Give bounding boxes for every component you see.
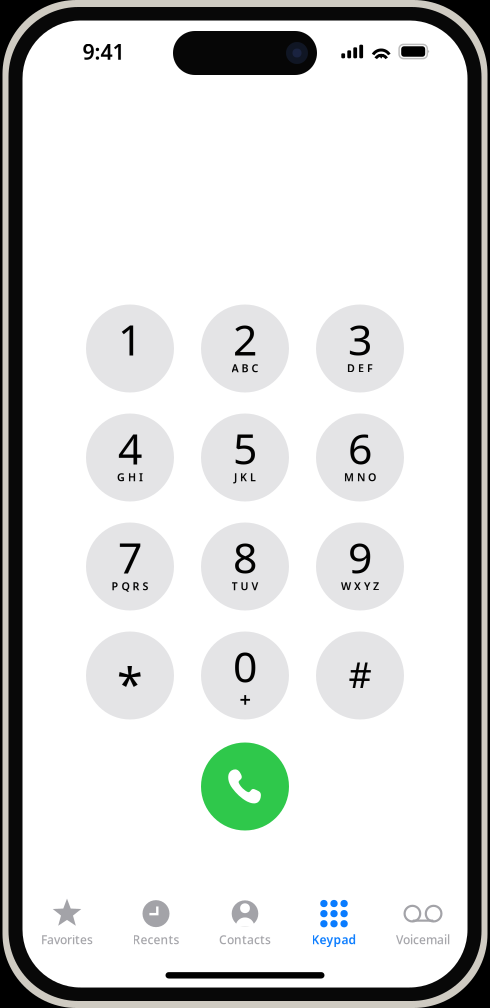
staticText: J K L	[234, 470, 256, 484]
staticText: 4	[118, 420, 142, 476]
button[interactable]: 8	[201, 522, 289, 610]
button[interactable]: Voicemail	[378, 899, 467, 947]
button[interactable]: Contacts	[200, 899, 289, 947]
staticText: *	[117, 652, 143, 714]
staticText: 3	[348, 311, 372, 367]
button[interactable]: #	[316, 631, 404, 719]
staticText: P Q R S	[111, 579, 148, 593]
staticText: Favorites	[41, 932, 93, 947]
button[interactable]: 0	[201, 631, 289, 719]
staticText: A B C	[231, 361, 258, 375]
button[interactable]: Keypad	[289, 899, 378, 947]
button[interactable]: 9	[316, 522, 404, 610]
staticText: 0	[233, 638, 257, 694]
staticText: 5	[233, 420, 257, 476]
staticText: Voicemail	[396, 932, 450, 947]
staticText: G H I	[117, 470, 143, 484]
button[interactable]: Favorites	[22, 899, 111, 947]
staticText: #	[348, 651, 371, 698]
staticText: 1	[118, 311, 142, 367]
button[interactable]: Recents	[111, 899, 200, 947]
staticText: Contacts	[219, 932, 271, 947]
button[interactable]: *	[86, 631, 174, 719]
staticText: Recents	[132, 932, 179, 947]
staticText: 9	[348, 529, 372, 585]
button[interactable]: 4	[86, 413, 174, 501]
staticText: 2	[233, 311, 257, 367]
staticText: Keypad	[311, 932, 356, 947]
staticText: W X Y Z	[341, 579, 379, 593]
staticText: T U V	[231, 579, 258, 593]
staticText: D E F	[347, 361, 373, 375]
staticText: +	[239, 686, 250, 712]
staticText: M N O	[344, 470, 376, 484]
button[interactable]: 1	[86, 304, 174, 392]
button[interactable]: 3	[316, 304, 404, 392]
button[interactable]: 7	[86, 522, 174, 610]
button[interactable]: Call	[201, 742, 289, 830]
staticText: 9:41	[82, 37, 124, 66]
staticText: 6	[348, 420, 372, 476]
button[interactable]: 5	[201, 413, 289, 501]
staticText: 8	[233, 529, 257, 585]
staticText: 7	[118, 529, 142, 585]
button[interactable]: 2	[201, 304, 289, 392]
button[interactable]: 6	[316, 413, 404, 501]
